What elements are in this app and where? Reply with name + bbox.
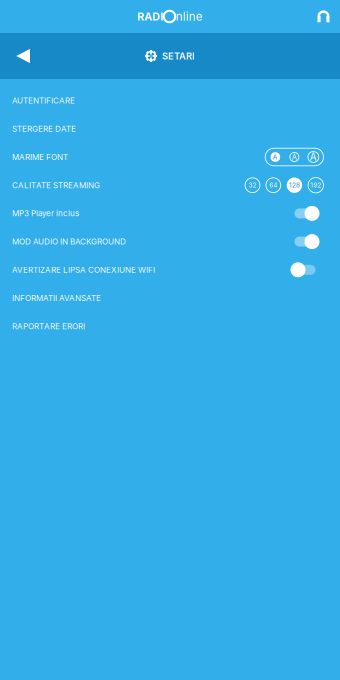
staticText: 64 [269,181,277,189]
staticText: A [310,151,317,163]
staticText: RADI [137,10,163,23]
button[interactable]: MP3 Player inclus [0,199,340,227]
button[interactable]: Font size [285,148,304,166]
staticText: MOD AUDIO IN BACKGROUND [12,237,126,246]
staticText: SETARI [162,50,195,62]
button[interactable]: Font size [266,148,285,166]
staticText: nline [176,10,203,23]
button[interactable]: Toggle on [290,234,323,250]
button[interactable]: Headphones [317,4,340,29]
staticText: AUTENTIFICARE [12,96,75,105]
staticText: CALITATE STREAMING [12,180,100,190]
button[interactable]: MOD AUDIO IN BACKGROUND [0,227,340,256]
button[interactable]: Streaming quality 64 [266,178,281,193]
button[interactable]: AVERTIZARE LIPSA CONEXIUNE WIFI [0,256,340,284]
button[interactable]: CALITATE STREAMING [0,171,340,199]
staticText: 32 [248,181,256,189]
staticText: STERGERE DATE [12,124,76,134]
button[interactable]: Font size [304,148,323,166]
button[interactable]: RAPORTARE ERORI [0,312,340,340]
button[interactable]: AUTENTIFICARE [0,86,340,115]
staticText: A [273,153,278,161]
staticText: AVERTIZARE LIPSA CONEXIUNE WIFI [12,265,155,275]
button[interactable]: MARIME FONT [0,143,340,171]
button[interactable]: Streaming quality 32 [245,178,260,193]
button[interactable]: Back [0,35,44,77]
button[interactable]: Toggle off [290,262,323,278]
staticText: 192 [310,181,321,189]
staticText: 128 [289,181,300,189]
staticText: RAPORTARE ERORI [12,321,85,331]
staticText: MP3 Player inclus [12,208,79,218]
staticText: INFORMATII AVANSATE [12,293,101,303]
button[interactable]: Streaming quality 128 [287,177,302,193]
button[interactable]: Toggle on [290,205,323,221]
staticText: A [292,152,297,161]
button[interactable]: STERGERE DATE [0,115,340,143]
button[interactable]: INFORMATII AVANSATE [0,284,340,312]
staticText: MARIME FONT [12,152,68,162]
button[interactable]: Streaming quality 192 [308,177,323,193]
